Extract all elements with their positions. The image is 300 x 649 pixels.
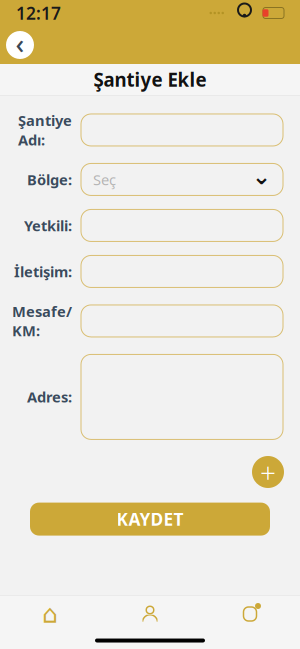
- button[interactable]: Notifications: [200, 604, 300, 623]
- staticText: Bölge:: [27, 170, 72, 189]
- staticText: 12:17: [16, 1, 61, 24]
- staticText: ⌄: [252, 164, 271, 189]
- button[interactable]: KAYDET: [30, 503, 270, 536]
- staticText: İletişim:: [14, 262, 72, 281]
- staticText: Mesafe/KM:: [12, 301, 72, 340]
- staticText: +: [260, 453, 276, 491]
- button[interactable]: Back: [6, 26, 34, 64]
- staticText: Şantiye Adı:: [18, 110, 72, 149]
- staticText: KAYDET: [116, 508, 183, 531]
- staticText: Şantiye Ekle: [93, 67, 206, 92]
- button[interactable]: Home: [0, 604, 100, 624]
- button[interactable]: Profile: [100, 604, 200, 623]
- staticText: Yetkili:: [24, 216, 72, 235]
- staticText: Adres:: [27, 387, 72, 407]
- button[interactable]: Add: [252, 453, 284, 491]
- staticText: Seç: [93, 170, 116, 189]
- staticText: ‹: [15, 26, 24, 61]
- staticText: ⌂: [42, 600, 58, 628]
